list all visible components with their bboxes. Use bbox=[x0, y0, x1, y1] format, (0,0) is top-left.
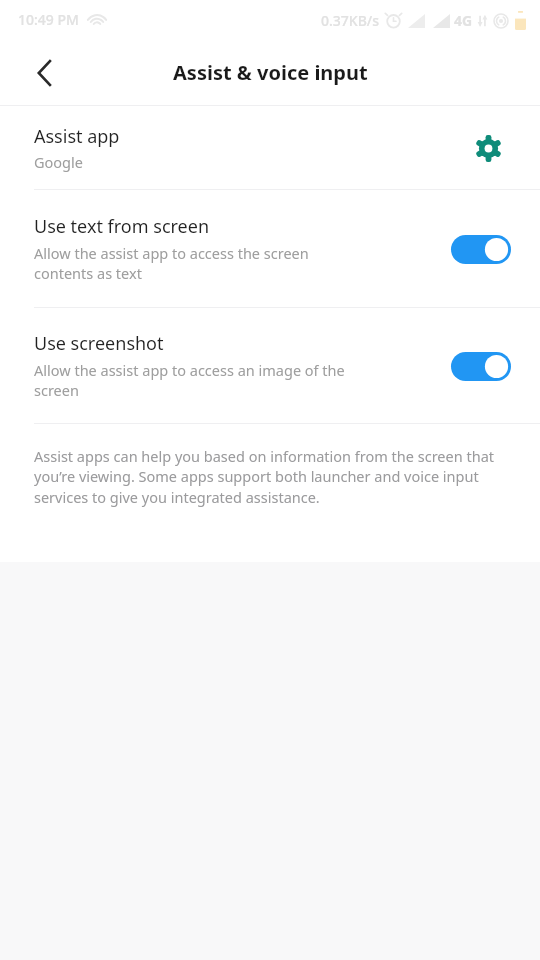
staticText: Allow the assist app to access an image … bbox=[34, 360, 345, 400]
staticText: Assist apps can help you based on inform… bbox=[34, 446, 500, 508]
button[interactable]: Use text from screen bbox=[0, 190, 540, 307]
staticText: Use screenshot bbox=[34, 331, 164, 356]
staticText: Use text from screen bbox=[34, 214, 210, 239]
button[interactable]: Assist app bbox=[0, 106, 540, 189]
staticText: 4G bbox=[454, 11, 473, 30]
button[interactable]: Assist app settings bbox=[466, 126, 510, 170]
button[interactable]: Back bbox=[20, 49, 68, 97]
staticText: 10:49 PM bbox=[18, 10, 79, 29]
button[interactable]: Use screenshot bbox=[0, 308, 540, 423]
staticText: Google bbox=[34, 152, 83, 172]
staticText: Assist app bbox=[34, 124, 120, 149]
button[interactable]: Use screenshot toggle, on bbox=[444, 345, 518, 387]
staticText: 0.37KB/s bbox=[321, 11, 380, 30]
button[interactable]: Use text from screen toggle, on bbox=[444, 228, 518, 270]
staticText: Allow the assist app to access the scree… bbox=[34, 243, 309, 283]
staticText: Assist & voice input bbox=[173, 59, 368, 86]
